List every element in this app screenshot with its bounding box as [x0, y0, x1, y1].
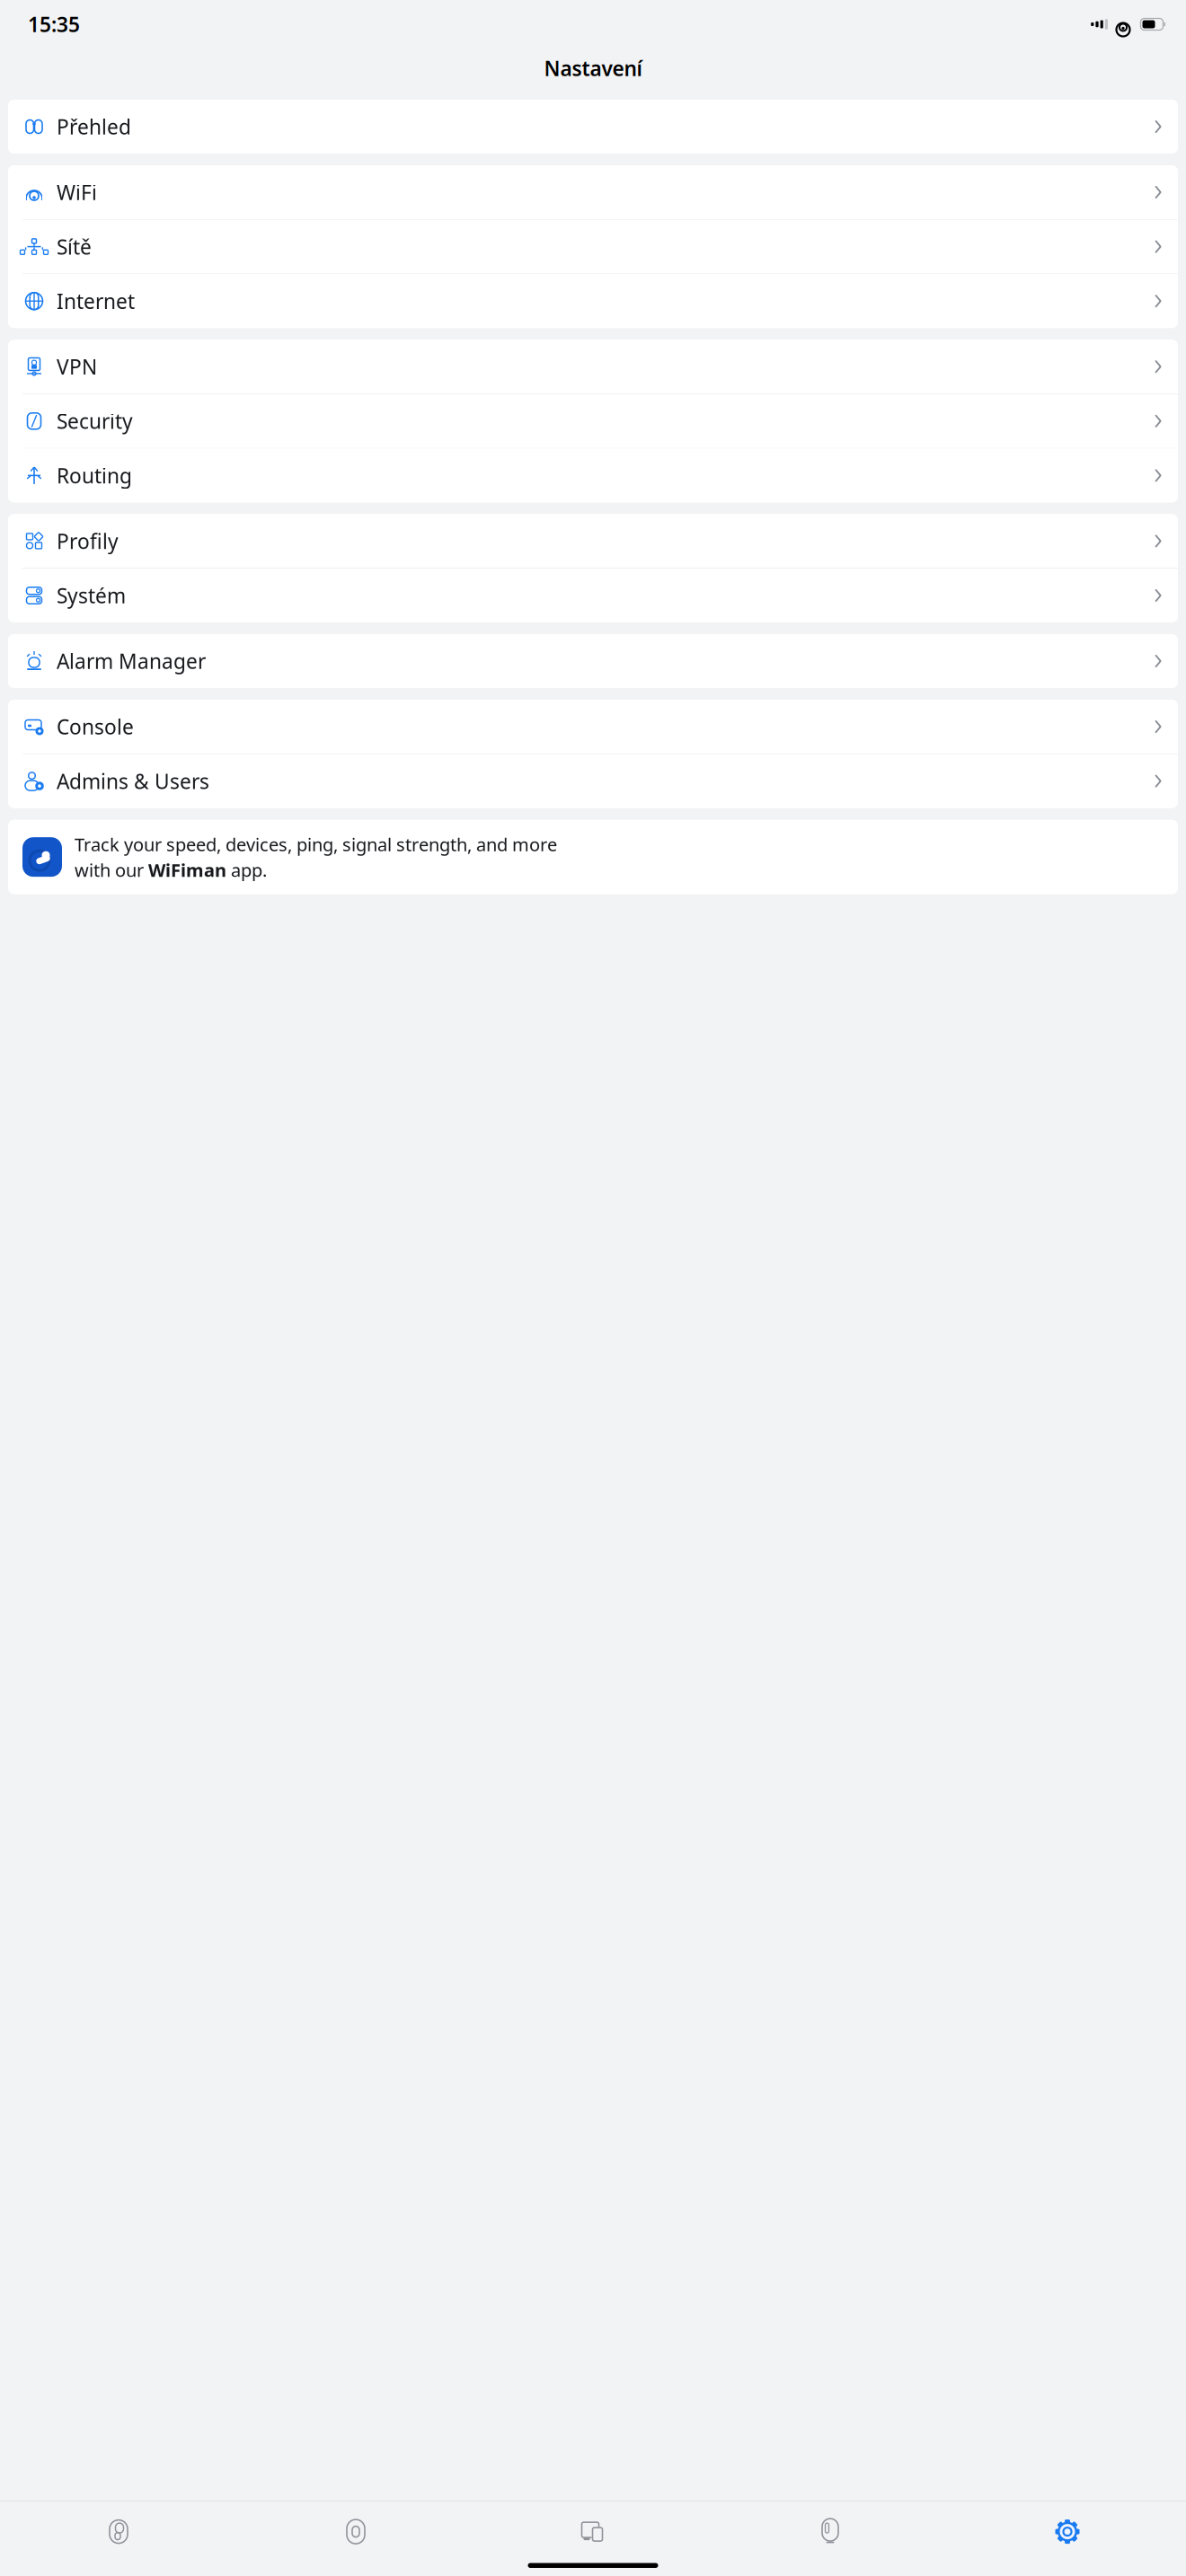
button[interactable]: Console	[8, 700, 1178, 754]
staticText: with our	[75, 858, 148, 882]
staticText: Routing	[57, 462, 132, 489]
staticText: WiFi	[57, 179, 97, 206]
staticText: Security	[57, 408, 133, 435]
staticText: Přehled	[57, 113, 131, 140]
button[interactable]: Track your speed, devices, ping, signal …	[0, 820, 1186, 894]
staticText: VPN	[57, 353, 97, 380]
button[interactable]: Systém	[8, 569, 1178, 622]
staticText: Track your speed, devices, ping, signal …	[75, 832, 557, 856]
button[interactable]: Sítě	[8, 220, 1178, 274]
staticText: Internet	[57, 288, 135, 315]
button[interactable]: WiFi	[8, 165, 1178, 219]
staticText: app.	[226, 858, 267, 882]
button[interactable]: Profily	[8, 514, 1178, 568]
button[interactable]: Devices overview	[237, 2518, 474, 2545]
button[interactable]: Routing	[8, 449, 1178, 502]
staticText: Admins & Users	[57, 768, 209, 795]
button[interactable]: Security	[8, 394, 1178, 448]
staticText: Alarm Manager	[57, 648, 206, 675]
staticText: WiFiman	[148, 858, 226, 882]
button[interactable]: Internet	[8, 274, 1178, 328]
button[interactable]: Settings	[949, 2518, 1186, 2545]
button[interactable]: Listen	[0, 2518, 237, 2545]
button[interactable]: Přehled	[8, 100, 1178, 154]
button[interactable]: Insights	[712, 2518, 949, 2545]
staticText: 15:35	[28, 11, 80, 38]
button[interactable]: VPN	[8, 340, 1178, 394]
staticText: Systém	[57, 582, 126, 609]
button[interactable]: Admins & Users	[8, 754, 1178, 808]
staticText: Nastavení	[544, 55, 642, 82]
button[interactable]: Clients	[474, 2518, 712, 2545]
staticText: Console	[57, 713, 134, 740]
staticText: Profily	[57, 528, 119, 555]
staticText: Sítě	[57, 233, 92, 260]
button[interactable]: Alarm Manager	[8, 634, 1178, 688]
